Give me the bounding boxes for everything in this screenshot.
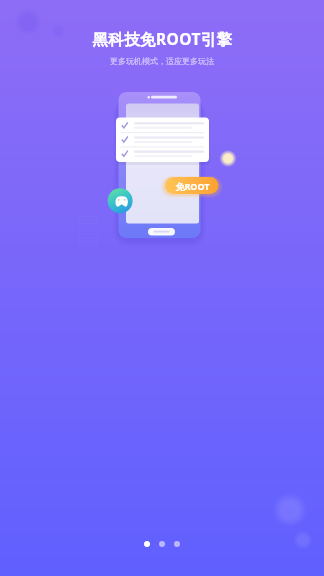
staticText: 免ROOT <box>175 180 210 192</box>
button[interactable]: Page 1 <box>144 541 150 547</box>
button[interactable]: Page 2 <box>159 541 165 547</box>
staticText: 更多玩机模式，适应更多玩法 <box>110 56 214 66</box>
button[interactable]: 免ROOT <box>165 177 219 194</box>
staticText: 黑科技免ROOT引擎 <box>92 28 233 49</box>
button[interactable]: Page 3 <box>174 541 180 547</box>
